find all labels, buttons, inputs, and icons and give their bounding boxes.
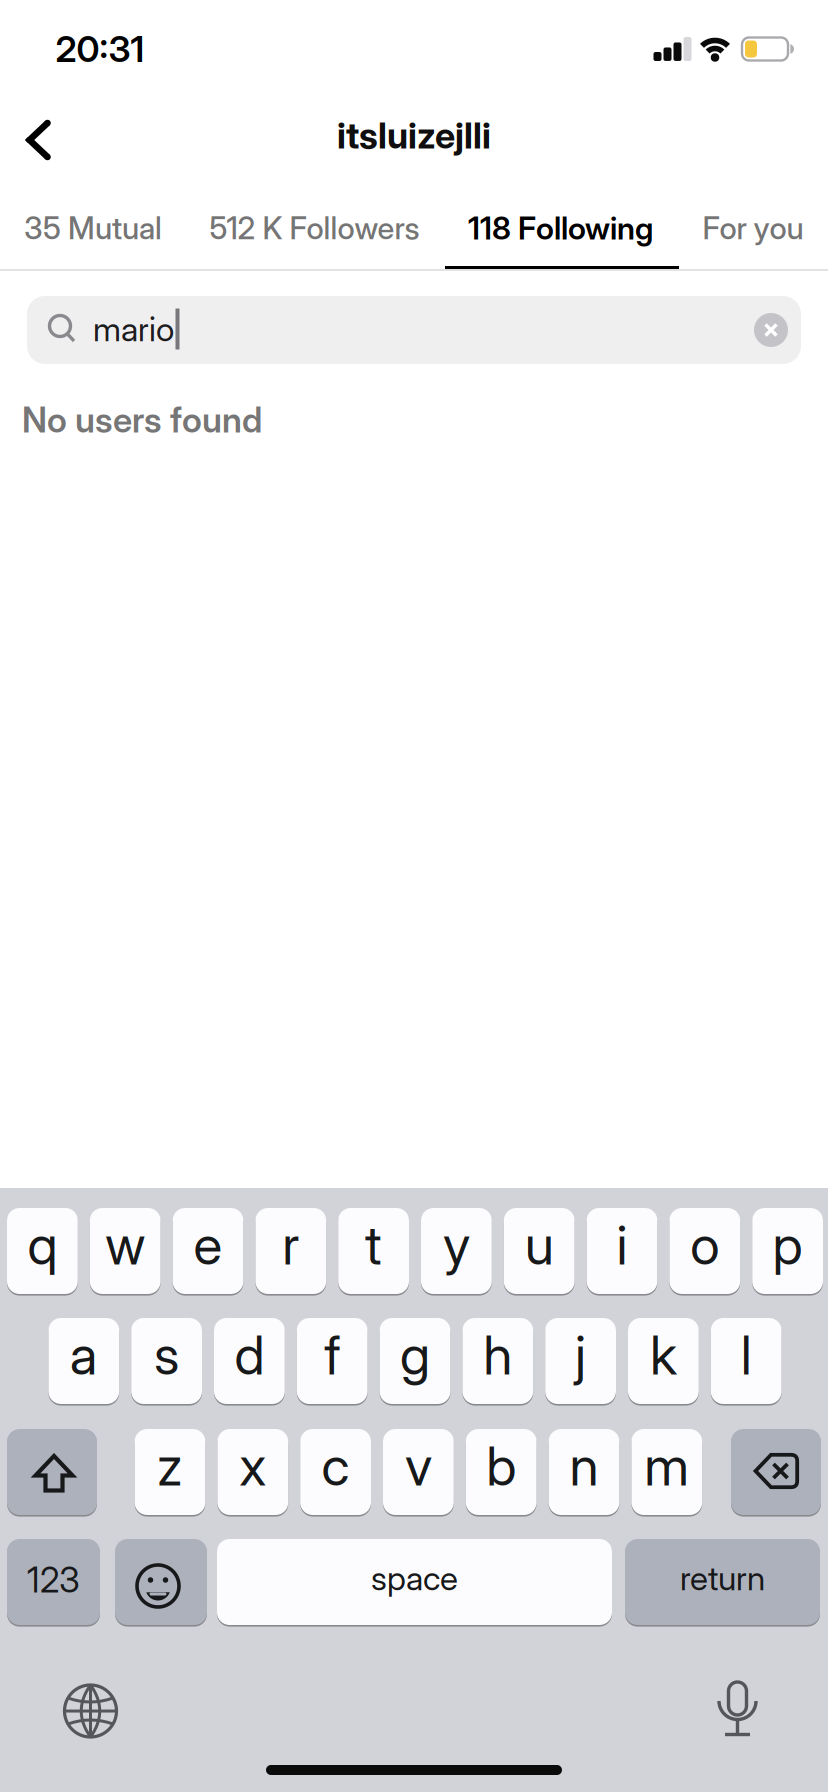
staticText: q <box>27 1213 57 1277</box>
button[interactable]: m <box>631 1428 702 1516</box>
button[interactable]: Shift <box>7 1428 97 1516</box>
staticText: No users found <box>22 399 262 441</box>
staticText: j <box>575 1323 586 1387</box>
staticText: m <box>644 1434 689 1498</box>
staticText: n <box>569 1434 598 1498</box>
button[interactable]: x <box>217 1428 288 1516</box>
staticText: w <box>105 1213 145 1277</box>
button[interactable]: return <box>625 1538 820 1626</box>
button[interactable]: Search <box>27 296 801 364</box>
staticText: itsluizejlli <box>337 114 491 157</box>
staticText: a <box>70 1323 98 1387</box>
button[interactable]: z <box>135 1428 205 1516</box>
button[interactable]: v <box>383 1428 454 1516</box>
staticText: d <box>234 1323 264 1387</box>
button[interactable]: f <box>297 1317 368 1405</box>
button[interactable]: t <box>338 1207 409 1295</box>
button[interactable]: r <box>255 1207 326 1295</box>
staticText: r <box>282 1213 299 1277</box>
staticText: l <box>741 1323 752 1387</box>
button[interactable]: y <box>421 1207 492 1295</box>
staticText: f <box>324 1323 340 1387</box>
button[interactable]: Delete <box>731 1428 821 1516</box>
staticText: For you <box>702 209 803 246</box>
button[interactable]: 35 Mutual <box>24 209 162 246</box>
button[interactable]: Next keyboard <box>61 1682 119 1740</box>
button[interactable]: e <box>173 1207 243 1295</box>
staticText: k <box>650 1323 677 1387</box>
staticText: u <box>525 1213 554 1277</box>
button[interactable]: h <box>462 1317 533 1405</box>
button[interactable]: Back <box>18 118 62 162</box>
button[interactable]: i <box>587 1207 657 1295</box>
button[interactable]: g <box>380 1317 450 1405</box>
staticText: o <box>690 1213 719 1277</box>
staticText: z <box>157 1434 183 1498</box>
staticText: b <box>486 1434 516 1498</box>
button[interactable]: u <box>504 1207 575 1295</box>
button[interactable]: s <box>131 1317 202 1405</box>
button[interactable]: l <box>711 1317 782 1405</box>
staticText: i <box>616 1213 627 1277</box>
button[interactable]: 118 Following <box>468 209 653 247</box>
button[interactable]: q <box>7 1207 78 1295</box>
staticText: s <box>154 1323 179 1387</box>
staticText: v <box>405 1434 432 1498</box>
staticText: mario <box>93 309 174 349</box>
button[interactable]: k <box>628 1317 699 1405</box>
button[interactable]: d <box>214 1317 285 1405</box>
staticText: 20:31 <box>55 27 144 71</box>
staticText: 118 Following <box>468 209 653 247</box>
staticText: c <box>322 1434 350 1498</box>
staticText: return <box>680 1558 765 1598</box>
button[interactable]: w <box>90 1207 161 1295</box>
staticText: y <box>443 1213 470 1277</box>
staticText: p <box>773 1213 803 1277</box>
button[interactable]: 512 K Followers <box>209 209 419 246</box>
button[interactable]: Clear search text <box>754 313 788 347</box>
staticText: h <box>483 1323 512 1387</box>
staticText: x <box>239 1434 266 1498</box>
button[interactable]: b <box>466 1428 537 1516</box>
button[interactable]: Dictation <box>715 1681 759 1739</box>
button[interactable]: c <box>300 1428 371 1516</box>
staticText: 35 Mutual <box>24 209 162 246</box>
button[interactable]: p <box>752 1207 823 1295</box>
staticText: e <box>193 1213 222 1277</box>
button[interactable]: Numbers <box>7 1538 100 1626</box>
button[interactable]: Emoji <box>115 1538 207 1626</box>
staticText: t <box>365 1213 382 1277</box>
staticText: 512 K Followers <box>209 209 419 246</box>
button[interactable]: For you <box>702 209 803 246</box>
staticText: space <box>371 1558 458 1598</box>
button[interactable]: space <box>217 1538 612 1626</box>
button[interactable]: a <box>48 1317 119 1405</box>
button[interactable]: o <box>669 1207 740 1295</box>
staticText: 123 <box>27 1559 80 1601</box>
staticText: g <box>400 1323 430 1387</box>
button[interactable]: n <box>549 1428 619 1516</box>
button[interactable]: j <box>545 1317 616 1405</box>
